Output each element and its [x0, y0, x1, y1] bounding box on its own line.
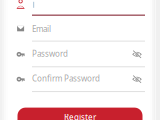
- button[interactable]: Email: [14, 22, 145, 42]
- button[interactable]: Register: [17, 108, 142, 120]
- staticText: Register: [64, 112, 96, 120]
- staticText: Email: [32, 24, 51, 34]
- button[interactable]: [14, 0, 145, 20]
- staticText: Confirm Password: [32, 73, 100, 84]
- button[interactable]: Password: [14, 47, 145, 67]
- button[interactable]: Confirm Password: [14, 72, 145, 92]
- staticText: Password: [32, 48, 68, 59]
